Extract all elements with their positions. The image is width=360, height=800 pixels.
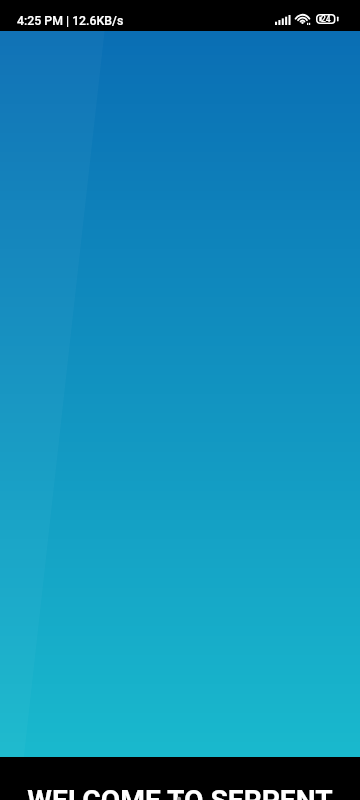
staticText: 4:25 PM | 12.6KB/s bbox=[17, 14, 124, 28]
staticText: WELCOME TO SERPENT bbox=[0, 784, 360, 800]
staticText: 24 bbox=[321, 14, 331, 24]
